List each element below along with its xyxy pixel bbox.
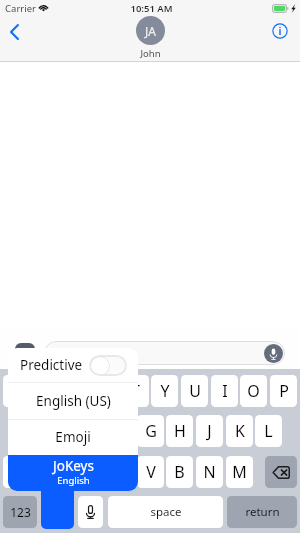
staticText: M (232, 461, 247, 483)
button[interactable]: T (122, 375, 149, 407)
button[interactable]: H (166, 415, 193, 447)
button[interactable]: U (181, 375, 208, 407)
button[interactable]: M (226, 456, 253, 488)
button[interactable]: Shift (3, 456, 35, 488)
button[interactable]: JoKeys (8, 455, 138, 491)
button[interactable]: Dictate (44, 341, 285, 365)
staticText: Y (160, 380, 170, 402)
button[interactable]: Y (151, 375, 178, 407)
staticText: Emoji (55, 428, 91, 446)
button[interactable]: Q (3, 375, 30, 407)
button[interactable]: P (270, 375, 297, 407)
button[interactable]: Camera (15, 343, 35, 365)
staticText: W (39, 380, 54, 402)
staticText: I (222, 380, 228, 402)
staticText: V (146, 461, 156, 483)
button[interactable]: E (62, 375, 89, 407)
button[interactable]: Z (48, 456, 75, 488)
button[interactable]: N (196, 456, 223, 488)
staticText: J (207, 420, 212, 442)
staticText: Carrier (5, 2, 36, 15)
staticText: U (189, 380, 201, 402)
staticText: N (203, 461, 216, 483)
button[interactable]: I (211, 375, 238, 407)
staticText: English (57, 474, 90, 487)
button[interactable]: W (33, 375, 60, 407)
staticText: Q (10, 380, 23, 402)
staticText: Predictive (20, 356, 83, 374)
button[interactable]: English (US) (8, 382, 138, 419)
staticText: return (245, 504, 280, 520)
staticText: S (57, 420, 66, 442)
button[interactable]: D (77, 415, 104, 447)
staticText: X (86, 461, 96, 483)
staticText: D (85, 420, 97, 442)
button[interactable]: Next keyboard (41, 496, 74, 528)
button[interactable]: Back (2, 17, 32, 47)
staticText: O (247, 380, 260, 402)
staticText: English (US) (36, 392, 111, 410)
staticText: T (131, 380, 140, 402)
button[interactable]: Dictation (78, 496, 103, 528)
staticText: R (101, 380, 111, 402)
staticText: B (174, 461, 185, 483)
button[interactable]: 123 (3, 496, 37, 528)
button[interactable]: return (227, 496, 297, 528)
button[interactable]: Backspace (265, 456, 297, 488)
button[interactable]: O (240, 375, 267, 407)
button[interactable]: JA (136, 16, 165, 60)
staticText: space (150, 504, 182, 520)
button[interactable]: space (108, 496, 223, 528)
button[interactable]: S (48, 415, 75, 447)
other: Dictate (264, 344, 283, 363)
staticText: John (140, 47, 161, 60)
button[interactable]: B (166, 456, 193, 488)
button[interactable]: K (226, 415, 253, 447)
staticText: G (145, 420, 157, 442)
staticText: JA (145, 23, 156, 39)
button[interactable]: X (77, 456, 104, 488)
button[interactable]: G (137, 415, 164, 447)
button[interactable]: Emoji (8, 419, 138, 455)
button[interactable]: Contact info (265, 17, 294, 46)
staticText: JoKeys (53, 457, 94, 475)
staticText: L (264, 420, 273, 442)
staticText: P (279, 380, 289, 402)
button[interactable]: L (255, 415, 282, 447)
button[interactable]: Predictive (8, 348, 138, 382)
staticText: Z (57, 461, 67, 483)
staticText: H (174, 420, 186, 442)
staticText: E (71, 380, 80, 402)
button[interactable]: R (92, 375, 119, 407)
staticText: K (235, 420, 245, 442)
staticText: 10:51 AM (130, 2, 173, 15)
button[interactable]: V (137, 456, 164, 488)
button[interactable]: J (196, 415, 223, 447)
staticText: 123 (10, 504, 31, 520)
